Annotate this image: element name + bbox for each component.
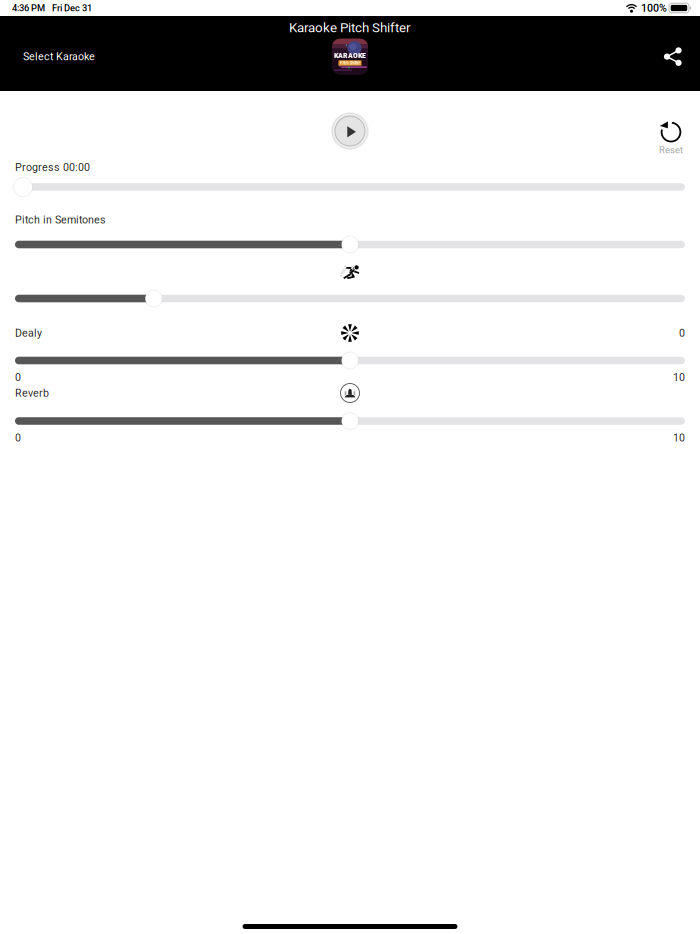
button[interactable]: Slider <box>15 412 685 429</box>
button[interactable]: Slider <box>15 177 685 196</box>
button[interactable]: Select Karaoke <box>21 44 97 69</box>
staticText: Fri Dec 31 <box>52 2 92 13</box>
staticText: Reset <box>659 144 683 155</box>
button[interactable]: Share <box>662 46 684 68</box>
button[interactable]: Reverb <box>340 383 359 402</box>
staticText: Select Karaoke <box>23 50 95 63</box>
staticText: Progress 00:00 <box>15 161 90 173</box>
button[interactable]: Slider <box>15 236 685 253</box>
staticText: Pitch Shifter <box>339 60 360 66</box>
button[interactable]: Reset <box>659 120 683 155</box>
staticText: KARAOKE <box>334 51 366 60</box>
button[interactable]: Slider <box>15 352 685 369</box>
staticText: 0 <box>15 431 21 444</box>
staticText: 0 <box>15 371 21 383</box>
staticText: 0 <box>679 327 685 339</box>
staticText: 10 <box>673 431 685 444</box>
staticText: 10 <box>673 371 685 383</box>
staticText: 4:36 PM <box>12 2 45 13</box>
staticText: Dealy <box>15 327 42 339</box>
staticText: Reverb <box>15 387 49 399</box>
staticText: 100% <box>641 2 667 14</box>
staticText: Pitch in Semitones <box>15 213 106 226</box>
button[interactable]: Slider <box>15 290 685 307</box>
button[interactable]: Karaoke Pitch Shifter <box>332 39 368 75</box>
button[interactable]: Play <box>331 112 369 150</box>
staticText: Karaoke Pitch Shifter <box>289 20 411 36</box>
